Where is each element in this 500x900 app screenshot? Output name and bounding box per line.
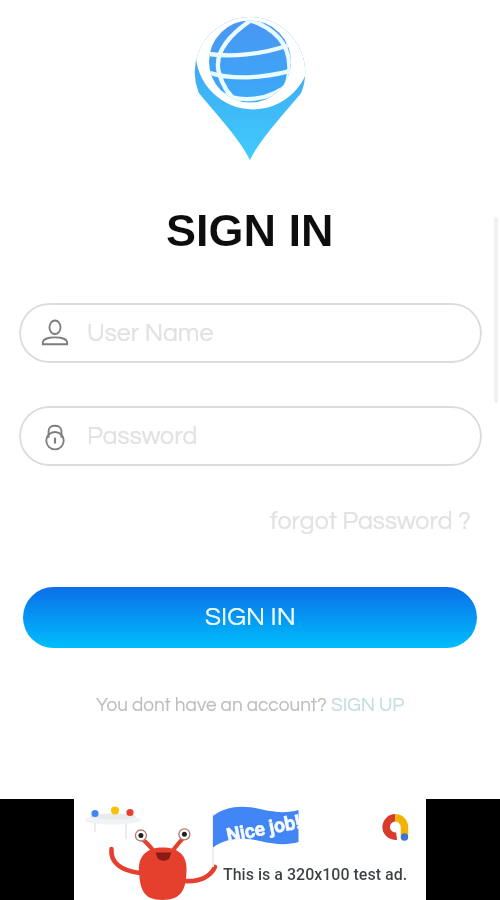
staticText: Nice job! <box>225 810 302 846</box>
button[interactable]: forgot Password ? <box>264 504 477 538</box>
staticText: SIGN IN <box>205 604 296 631</box>
staticText: SIGN IN <box>166 205 334 255</box>
staticText: SIGN UP <box>331 695 405 715</box>
staticText: forgot Password ? <box>270 508 471 534</box>
staticText: This is a 320x100 test ad. <box>223 865 408 884</box>
button[interactable]: Advertisement <box>74 799 426 900</box>
button[interactable]: SIGN IN <box>23 587 477 648</box>
button[interactable]: User Name <box>19 303 482 363</box>
button[interactable]: Password <box>19 406 482 466</box>
staticText: You dont have an account? <box>96 695 331 715</box>
staticText: Password <box>87 423 198 449</box>
button[interactable]: SIGN UP <box>331 695 405 715</box>
staticText: User Name <box>87 320 214 346</box>
